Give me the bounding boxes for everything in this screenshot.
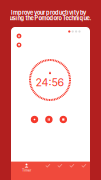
button[interactable]: Task list [17, 34, 21, 38]
button[interactable]: Pause [45, 116, 53, 123]
button[interactable]: Timer [11, 160, 42, 180]
button[interactable]: Reports [54, 160, 66, 180]
staticText: using the Pomodoro Technique. [9, 15, 91, 21]
button[interactable]: Tips [17, 43, 21, 47]
button[interactable]: Goals [66, 160, 78, 180]
button[interactable]: Tasks [42, 160, 54, 180]
button[interactable]: Reset [31, 116, 38, 123]
button[interactable]: Stop [60, 116, 67, 123]
button[interactable]: Settings [78, 160, 90, 180]
staticText: Timer [22, 168, 31, 172]
staticText: Improve your productivity by [11, 9, 86, 16]
staticText: 24:56 [35, 76, 64, 89]
